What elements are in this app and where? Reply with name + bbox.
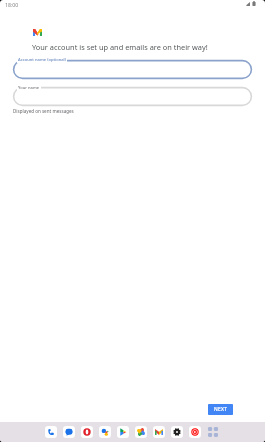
button[interactable]	[13, 87, 252, 106]
button[interactable]: Opera browser	[81, 426, 93, 438]
staticText: Displayed on sent messages	[13, 108, 74, 114]
staticText: 18:00	[5, 1, 19, 8]
button[interactable]: Gmail	[153, 426, 165, 438]
staticText: NEXT	[214, 406, 228, 413]
button[interactable]	[13, 60, 252, 79]
button[interactable]: Contacts	[99, 426, 111, 438]
button[interactable]: NEXT	[208, 404, 233, 415]
button[interactable]: Phone	[45, 426, 57, 438]
staticText: Your name	[18, 85, 40, 91]
button[interactable]: All apps	[207, 426, 219, 438]
button[interactable]: Play Store	[117, 426, 129, 438]
button[interactable]: Settings	[171, 426, 183, 438]
button[interactable]: Google Photos	[135, 426, 147, 438]
staticText: Account name (optional)	[18, 57, 66, 63]
staticText: Your account is set up and emails are on…	[32, 42, 208, 52]
button[interactable]: Messages	[63, 426, 75, 438]
button[interactable]: YouTube Music	[189, 426, 201, 438]
